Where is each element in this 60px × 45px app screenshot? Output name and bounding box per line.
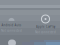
button[interactable]: Android Auto: [1, 16, 22, 33]
staticText: Android Auto: [1, 23, 21, 27]
staticText: Apple CarPlay: [36, 25, 55, 28]
button[interactable]: Apple CarPlay: [35, 15, 56, 34]
staticText: Not connected: [1, 29, 22, 32]
staticText: Not connected: [35, 30, 56, 34]
